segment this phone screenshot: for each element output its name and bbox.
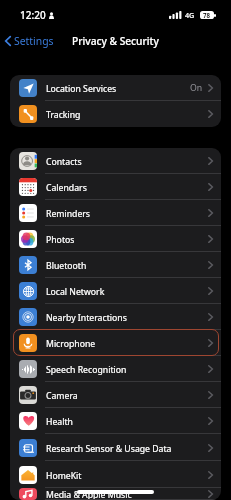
button[interactable]: Settings <box>3 31 56 51</box>
staticText: Privacy & Security <box>72 34 159 48</box>
staticText: Tracking <box>46 109 208 121</box>
staticText: Health <box>46 416 208 428</box>
button[interactable]: Speech Recognition <box>10 356 221 382</box>
staticText: 4G <box>185 10 195 20</box>
button[interactable]: Photos <box>10 226 221 252</box>
button[interactable]: Microphone <box>10 330 221 356</box>
staticText: Camera <box>46 390 208 402</box>
button[interactable]: Calendars <box>10 174 221 200</box>
staticText: Speech Recognition <box>46 364 208 376</box>
staticText: Local Network <box>46 286 208 298</box>
button[interactable]: Media & Apple Music <box>10 488 221 500</box>
staticText: Nearby Interactions <box>46 312 208 324</box>
button[interactable]: Health <box>10 408 221 434</box>
staticText: Microphone <box>46 338 208 350</box>
staticText: 78 <box>203 11 211 19</box>
button[interactable]: Camera <box>10 382 221 408</box>
staticText: Photos <box>46 234 208 246</box>
button[interactable]: HomeKit <box>10 461 221 488</box>
button[interactable]: Bluetooth <box>10 252 221 278</box>
staticText: Media & Apple Music <box>46 489 208 500</box>
staticText: Bluetooth <box>46 260 208 272</box>
staticText: HomeKit <box>46 470 208 482</box>
staticText: Settings <box>14 34 54 48</box>
button[interactable]: Contacts <box>10 148 221 174</box>
button[interactable]: Research Sensor & Usage Data <box>10 434 221 461</box>
staticText: On <box>190 82 203 94</box>
staticText: 12:20 <box>20 8 46 22</box>
button[interactable]: Tracking <box>10 101 221 127</box>
staticText: Calendars <box>46 182 208 194</box>
staticText: Location Services <box>46 83 190 95</box>
staticText: Contacts <box>46 156 208 168</box>
button[interactable]: Nearby Interactions <box>10 304 221 330</box>
button[interactable]: Location Services <box>10 75 221 101</box>
button[interactable]: Local Network <box>10 278 221 304</box>
staticText: Reminders <box>46 208 208 220</box>
staticText: Research Sensor & Usage Data <box>46 443 208 455</box>
button[interactable]: Reminders <box>10 200 221 226</box>
